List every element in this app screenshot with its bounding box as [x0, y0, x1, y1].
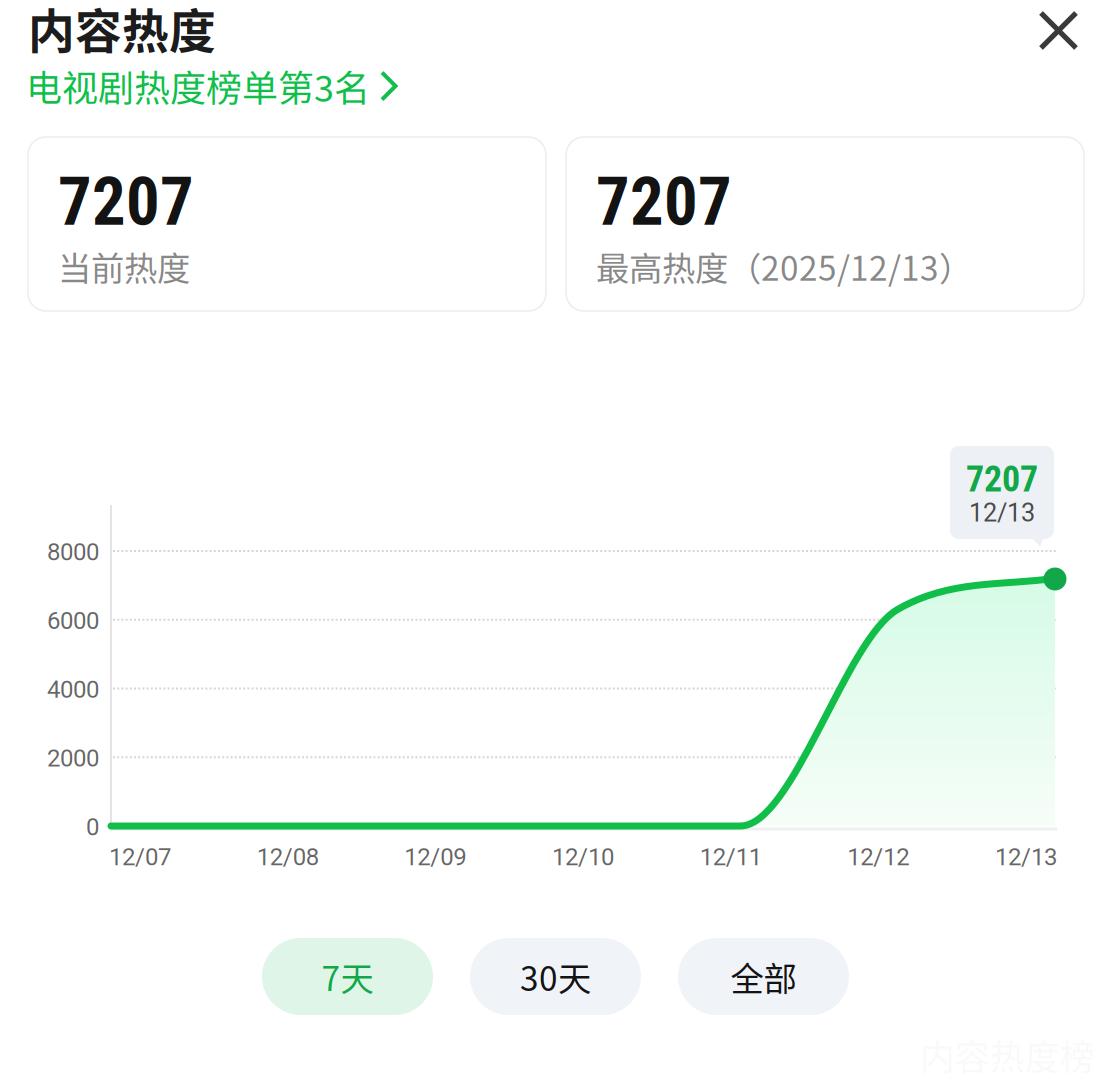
staticText: 内容热度 [28, 0, 216, 62]
staticText: 8000 [47, 538, 99, 566]
staticText: 7207 [596, 163, 732, 241]
button[interactable]: Close [1038, 10, 1079, 51]
staticText: 12/11 [700, 843, 762, 871]
staticText: 当前热度 [58, 242, 190, 290]
staticText: 12/07 [109, 843, 171, 871]
staticText: 电视剧热度榜单第3名 [26, 60, 370, 112]
staticText: 7207 [58, 163, 194, 241]
staticText: 7207 [966, 458, 1038, 500]
staticText: 6000 [47, 607, 99, 635]
staticText: 12/13 [995, 843, 1057, 871]
button[interactable]: 电视剧热度榜单第3名 [26, 60, 398, 112]
staticText: 30天 [520, 952, 591, 1001]
staticText: 12/10 [552, 843, 614, 871]
staticText: 2000 [47, 744, 99, 772]
staticText: 4000 [47, 675, 99, 703]
button[interactable]: 7天 [262, 938, 433, 1015]
staticText: 7天 [321, 952, 373, 1001]
staticText: 0 [86, 813, 99, 841]
staticText: 最高热度（2025/12/13） [596, 242, 972, 290]
staticText: 全部 [730, 952, 796, 1001]
button[interactable]: 30天 [470, 938, 641, 1015]
button[interactable]: 全部 [678, 938, 849, 1015]
staticText: 12/09 [404, 843, 466, 871]
staticText: 12/13 [969, 498, 1035, 528]
staticText: 12/12 [847, 843, 909, 871]
staticText: 12/08 [257, 843, 319, 871]
